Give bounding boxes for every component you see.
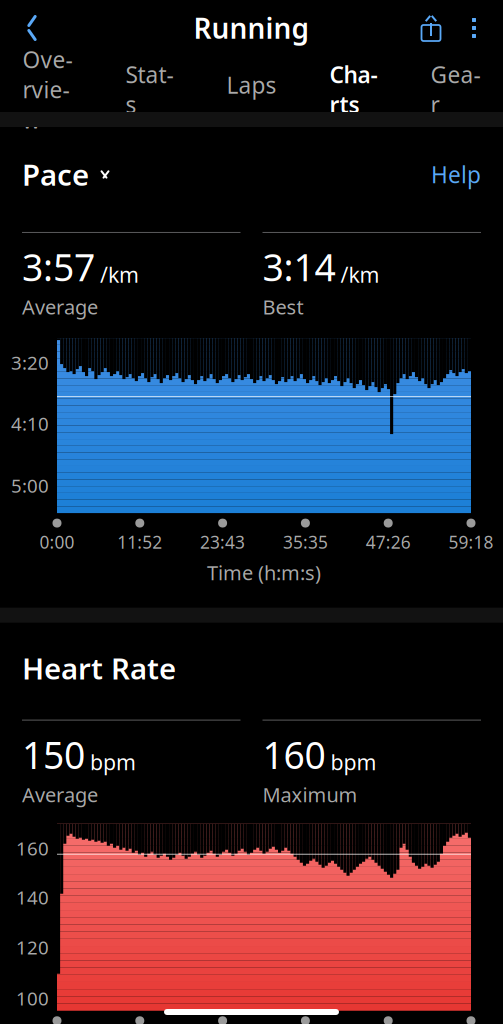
- staticText: Charts: [329, 59, 377, 120]
- staticText: 160: [262, 730, 325, 779]
- staticText: Heart Rate: [22, 649, 176, 688]
- staticText: 4:10: [11, 411, 49, 436]
- staticText: 0:00: [39, 531, 74, 554]
- button[interactable]: Help: [431, 153, 481, 195]
- staticText: Help: [431, 159, 481, 189]
- button[interactable]: Laps: [226, 56, 277, 112]
- staticText: 150: [22, 730, 85, 779]
- button[interactable]: More options: [454, 5, 494, 51]
- staticText: 59:18: [448, 531, 493, 554]
- staticText: Laps: [226, 70, 276, 100]
- button[interactable]: Share: [408, 5, 454, 51]
- button[interactable]: Overview: [22, 56, 73, 112]
- staticText: Average: [22, 781, 98, 808]
- staticText: Maximum: [262, 781, 357, 808]
- staticText: Pace: [22, 155, 89, 194]
- staticText: 3:20: [11, 350, 49, 375]
- staticText: /km: [100, 260, 139, 288]
- staticText: Running: [193, 9, 309, 47]
- staticText: 23:43: [200, 531, 245, 554]
- button[interactable]: Stats: [124, 56, 175, 112]
- staticText: 11:52: [117, 531, 162, 554]
- staticText: 160: [16, 836, 49, 860]
- button[interactable]: Charts: [328, 56, 379, 112]
- staticText: Average: [22, 293, 98, 320]
- staticText: 3:14: [262, 242, 335, 292]
- staticText: Time (h:m:s): [207, 559, 321, 586]
- staticText: 140: [16, 885, 49, 909]
- staticText: 120: [16, 935, 49, 959]
- staticText: 100: [16, 986, 49, 1010]
- staticText: 35:35: [283, 531, 328, 554]
- staticText: Gear: [430, 59, 480, 120]
- staticText: 5:00: [11, 473, 49, 498]
- button[interactable]: Gear: [430, 56, 481, 112]
- staticText: bpm: [90, 748, 136, 776]
- staticText: Best: [262, 293, 303, 320]
- button[interactable]: Pace: [22, 149, 113, 200]
- staticText: 3:57: [22, 242, 95, 292]
- button[interactable]: Back: [9, 5, 55, 51]
- staticText: Overview: [22, 44, 72, 135]
- staticText: Stats: [125, 59, 173, 120]
- staticText: /km: [340, 260, 379, 288]
- staticText: bpm: [330, 748, 376, 776]
- staticText: 47:26: [366, 531, 411, 554]
